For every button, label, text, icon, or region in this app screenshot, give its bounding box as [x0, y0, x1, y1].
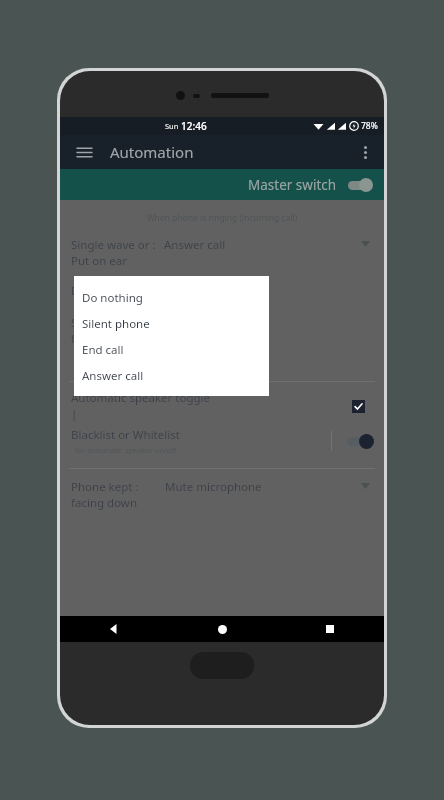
button[interactable]: Home: [168, 616, 276, 642]
button[interactable]: Automatic speaker toggle |: [60, 390, 384, 422]
button[interactable]: More options: [350, 137, 380, 167]
staticText: When phone is ringing (incoming call): [60, 212, 384, 224]
staticText: Automatic speaker toggle |: [71, 390, 210, 422]
button[interactable]: Master switch: [60, 169, 384, 200]
staticText: Master switch: [248, 176, 337, 194]
staticText: Shake phone or flip it: [71, 315, 156, 347]
staticText: Answer call: [82, 368, 144, 384]
button[interactable]: Recent apps: [276, 616, 384, 642]
button[interactable]: Phone kept : facing down: [60, 479, 384, 511]
button[interactable]: Open navigation drawer: [68, 136, 100, 168]
staticText: Do nothing: [82, 290, 143, 306]
staticText: Blacklist or Whitelist: [71, 427, 180, 443]
staticText: 12:46: [181, 119, 207, 133]
button[interactable]: Blacklist or Whitelist: [60, 427, 384, 455]
button[interactable]: Silent phone: [74, 311, 269, 337]
staticText: Answer call: [164, 237, 226, 253]
staticText: 78%: [361, 120, 378, 132]
button[interactable]: Back: [60, 616, 168, 642]
button[interactable]: Do nothing: [74, 285, 269, 311]
staticText: End call: [82, 342, 124, 358]
staticText: Sun: [165, 121, 179, 131]
button[interactable]: End call: [74, 337, 269, 363]
staticText: Automation: [110, 142, 194, 162]
button[interactable]: Single wave or : Put on ear: [60, 237, 384, 269]
staticText: for automatic speaker on/off: [75, 445, 177, 455]
staticText: Double wave: [71, 283, 141, 299]
button[interactable]: Answer call: [74, 363, 269, 389]
staticText: Silent phone: [82, 316, 150, 332]
staticText: Mute microphone: [165, 479, 262, 495]
staticText: Phone kept : facing down: [71, 479, 139, 511]
staticText: Single wave or : Put on ear: [71, 237, 156, 269]
